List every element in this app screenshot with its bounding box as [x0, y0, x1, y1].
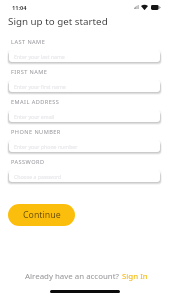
- button[interactable]: Enter your phone number: [9, 140, 160, 152]
- staticText: Continue: [23, 209, 61, 221]
- button[interactable]: Continue: [8, 204, 75, 226]
- button[interactable]: Enter your first name: [9, 80, 160, 92]
- button[interactable]: Enter your last name: [9, 50, 160, 62]
- staticText: 11:04: [12, 4, 27, 12]
- staticText: Sign up to get started: [8, 15, 108, 28]
- staticText: Enter your last name: [14, 53, 65, 60]
- staticText: FIRST NAME: [11, 68, 48, 76]
- staticText: LAST NAME: [11, 38, 46, 46]
- staticText: Enter your phone number: [14, 143, 78, 150]
- staticText: Already have an account?: [25, 271, 122, 282]
- button[interactable]: Choose a password: [9, 170, 160, 182]
- staticText: Enter your email: [14, 113, 55, 120]
- staticText: Choose a password: [14, 173, 62, 180]
- staticText: PHONE NUMBER: [11, 128, 61, 136]
- staticText: Sign In: [122, 271, 148, 282]
- staticText: PASSWORD: [11, 158, 45, 166]
- staticText: EMAIL ADDRESS: [11, 98, 60, 106]
- staticText: Enter your first name: [14, 83, 66, 90]
- button[interactable]: Sign In: [122, 271, 148, 282]
- button[interactable]: Enter your email: [9, 110, 160, 122]
